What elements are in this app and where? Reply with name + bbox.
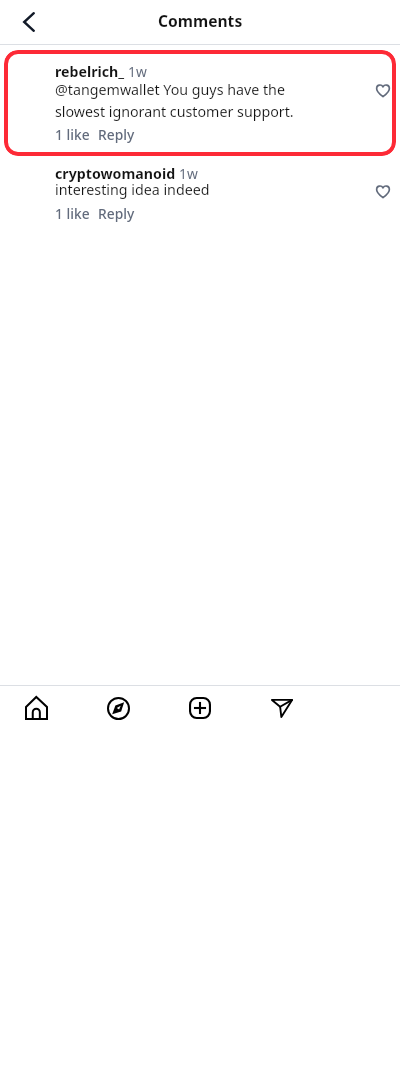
button[interactable]: Reply	[98, 204, 135, 223]
staticText: Reply	[98, 125, 135, 144]
button[interactable]: Home	[13, 686, 59, 730]
staticText: 1 like	[55, 204, 90, 223]
staticText: Comments	[158, 10, 243, 31]
button[interactable]: Like	[369, 177, 397, 205]
button[interactable]: Create	[177, 686, 223, 730]
staticText: rebelrich_	[55, 62, 125, 81]
staticText: cryptowomanoid	[55, 164, 176, 183]
staticText: 1 like	[55, 125, 90, 144]
button[interactable]	[4, 50, 396, 156]
button[interactable]	[4, 158, 396, 226]
button[interactable]: Back	[5, 3, 43, 41]
button[interactable]: Explore	[95, 686, 141, 730]
button[interactable]: Reply	[98, 125, 135, 144]
button[interactable]: 1 like	[55, 125, 90, 144]
button[interactable]: Like	[369, 76, 397, 104]
staticText: @tangemwallet You guys have the slowest …	[55, 80, 355, 121]
staticText: interesting idea indeed	[55, 180, 355, 199]
button[interactable]: Messages	[259, 686, 305, 730]
staticText: 1w	[179, 164, 198, 183]
staticText: Reply	[98, 204, 135, 223]
button[interactable]: 1 like	[55, 204, 90, 223]
staticText: 1w	[128, 62, 147, 81]
